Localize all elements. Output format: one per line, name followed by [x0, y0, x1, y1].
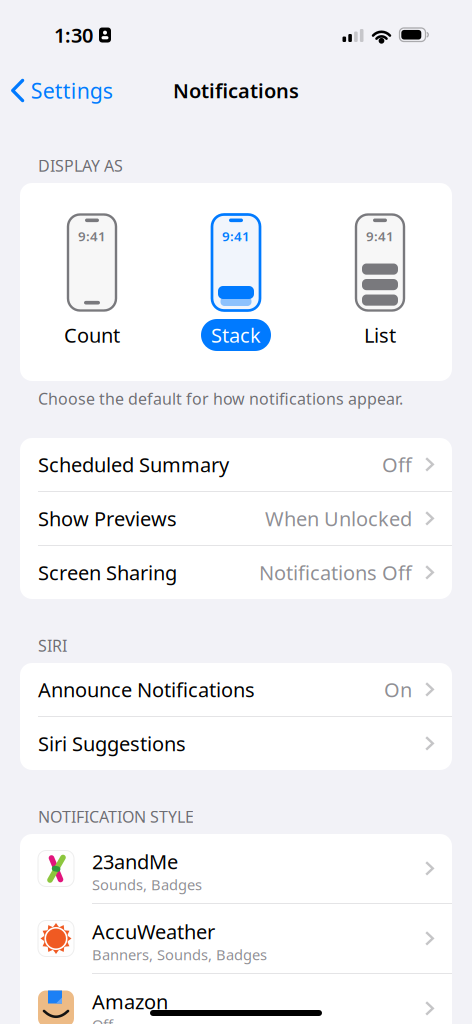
button[interactable]: 9:41: [57, 213, 127, 351]
staticText: On: [384, 676, 412, 703]
button[interactable]: 23andMe: [20, 834, 452, 903]
button[interactable]: Show Previews: [20, 492, 452, 545]
staticText: Sounds, Badges: [92, 875, 202, 894]
staticText: 9:41: [78, 227, 106, 245]
staticText: Show Previews: [38, 505, 177, 532]
button[interactable]: Amazon: [20, 974, 452, 1024]
staticText: AccuWeather: [92, 918, 215, 945]
staticText: Notifications Off: [259, 559, 412, 586]
staticText: List: [364, 322, 396, 348]
staticText: 1:30: [54, 22, 93, 48]
staticText: Announce Notifications: [38, 676, 255, 703]
button[interactable]: Announce Notifications: [20, 663, 452, 716]
staticText: Choose the default for how notifications…: [38, 388, 403, 409]
button[interactable]: Siri Suggestions: [20, 717, 452, 770]
staticText: 9:41: [366, 227, 394, 245]
staticText: NOTIFICATION STYLE: [38, 806, 194, 827]
staticText: Screen Sharing: [38, 559, 177, 586]
staticText: When Unlocked: [265, 505, 412, 532]
staticText: Settings: [31, 76, 113, 105]
staticText: Scheduled Summary: [38, 451, 229, 478]
staticText: Off: [382, 451, 412, 478]
staticText: Banners, Sounds, Badges: [92, 945, 267, 964]
button[interactable]: Scheduled Summary: [20, 438, 452, 491]
staticText: DISPLAY AS: [38, 155, 123, 176]
staticText: Notifications: [173, 77, 299, 104]
button[interactable]: Screen Sharing: [20, 546, 452, 599]
staticText: Amazon: [92, 988, 168, 1015]
button[interactable]: 9:41: [345, 213, 415, 351]
staticText: 23andMe: [92, 848, 178, 875]
staticText: 9:41: [222, 227, 250, 245]
staticText: Stack: [211, 322, 261, 348]
button[interactable]: 9:41: [201, 213, 271, 351]
button[interactable]: AccuWeather: [20, 904, 452, 973]
staticText: Count: [64, 322, 120, 348]
staticText: Off: [92, 1015, 113, 1024]
staticText: Siri Suggestions: [38, 730, 186, 757]
button[interactable]: Settings: [0, 70, 123, 111]
staticText: SIRI: [38, 635, 67, 656]
